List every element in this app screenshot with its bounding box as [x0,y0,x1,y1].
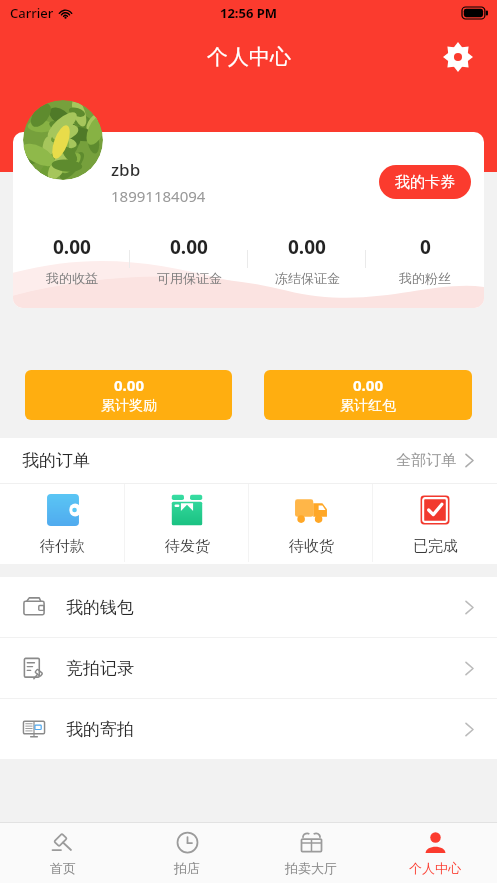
button[interactable]: 已完成 [373,484,497,562]
staticText: 我的寄拍 [66,719,134,740]
button[interactable]: 待收货 [249,484,373,562]
button[interactable]: 0.00 [13,234,130,296]
staticText: 待发货 [165,537,210,556]
staticText: 我的粉丝 [399,270,451,286]
button[interactable]: 0.00 [264,370,472,420]
staticText: 0.00 [114,375,144,395]
staticText: Carrier [10,4,54,22]
button[interactable]: 拍卖大厅 [249,823,373,883]
button[interactable]: Settings [433,32,483,82]
staticText: 12:56 PM [220,4,278,22]
staticText: 个人中心 [409,860,461,876]
button[interactable]: 0.00 [25,370,232,420]
staticText: 0.00 [53,234,91,260]
staticText: 拍店 [174,860,200,876]
button[interactable]: 0 [366,234,484,296]
staticText: 累计奖励 [101,397,157,415]
staticText: 拍卖大厅 [285,860,337,876]
staticText: 冻结保证金 [275,270,340,286]
staticText: 我的卡券 [395,173,455,192]
staticText: 已完成 [413,537,458,556]
staticText: zbb [111,158,141,181]
button[interactable]: Avatar [23,100,103,180]
button[interactable]: 拍店 [125,823,249,883]
staticText: 累计红包 [340,397,396,415]
staticText: 全部订单 [396,451,456,470]
staticText: 0.00 [170,234,208,260]
button[interactable]: 全部订单 [396,451,475,470]
staticText: 个人中心 [207,44,291,70]
staticText: 待收货 [289,537,334,556]
staticText: 0.00 [353,375,383,395]
staticText: 可用保证金 [157,270,222,286]
button[interactable]: 我的钱包 [0,577,497,637]
button[interactable]: 0.00 [248,234,366,296]
button[interactable]: 0.00 [130,234,248,296]
staticText: 0.00 [288,234,326,260]
staticText: 18991184094 [111,186,206,206]
staticText: 首页 [50,860,76,876]
button[interactable]: 待付款 [0,484,125,562]
staticText: 待付款 [40,537,85,556]
button[interactable]: 个人中心 [373,823,497,883]
button[interactable]: 我的卡券 [379,165,471,199]
staticText: 竞拍记录 [66,658,134,679]
staticText: 我的收益 [46,270,98,286]
button[interactable]: 首页 [0,823,125,883]
staticText: 我的订单 [22,450,90,471]
staticText: 我的钱包 [66,597,134,618]
button[interactable]: 待发货 [125,484,249,562]
button[interactable]: 我的寄拍 [0,699,497,759]
staticText: 0 [420,234,431,260]
button[interactable]: 竞拍记录 [0,638,497,698]
